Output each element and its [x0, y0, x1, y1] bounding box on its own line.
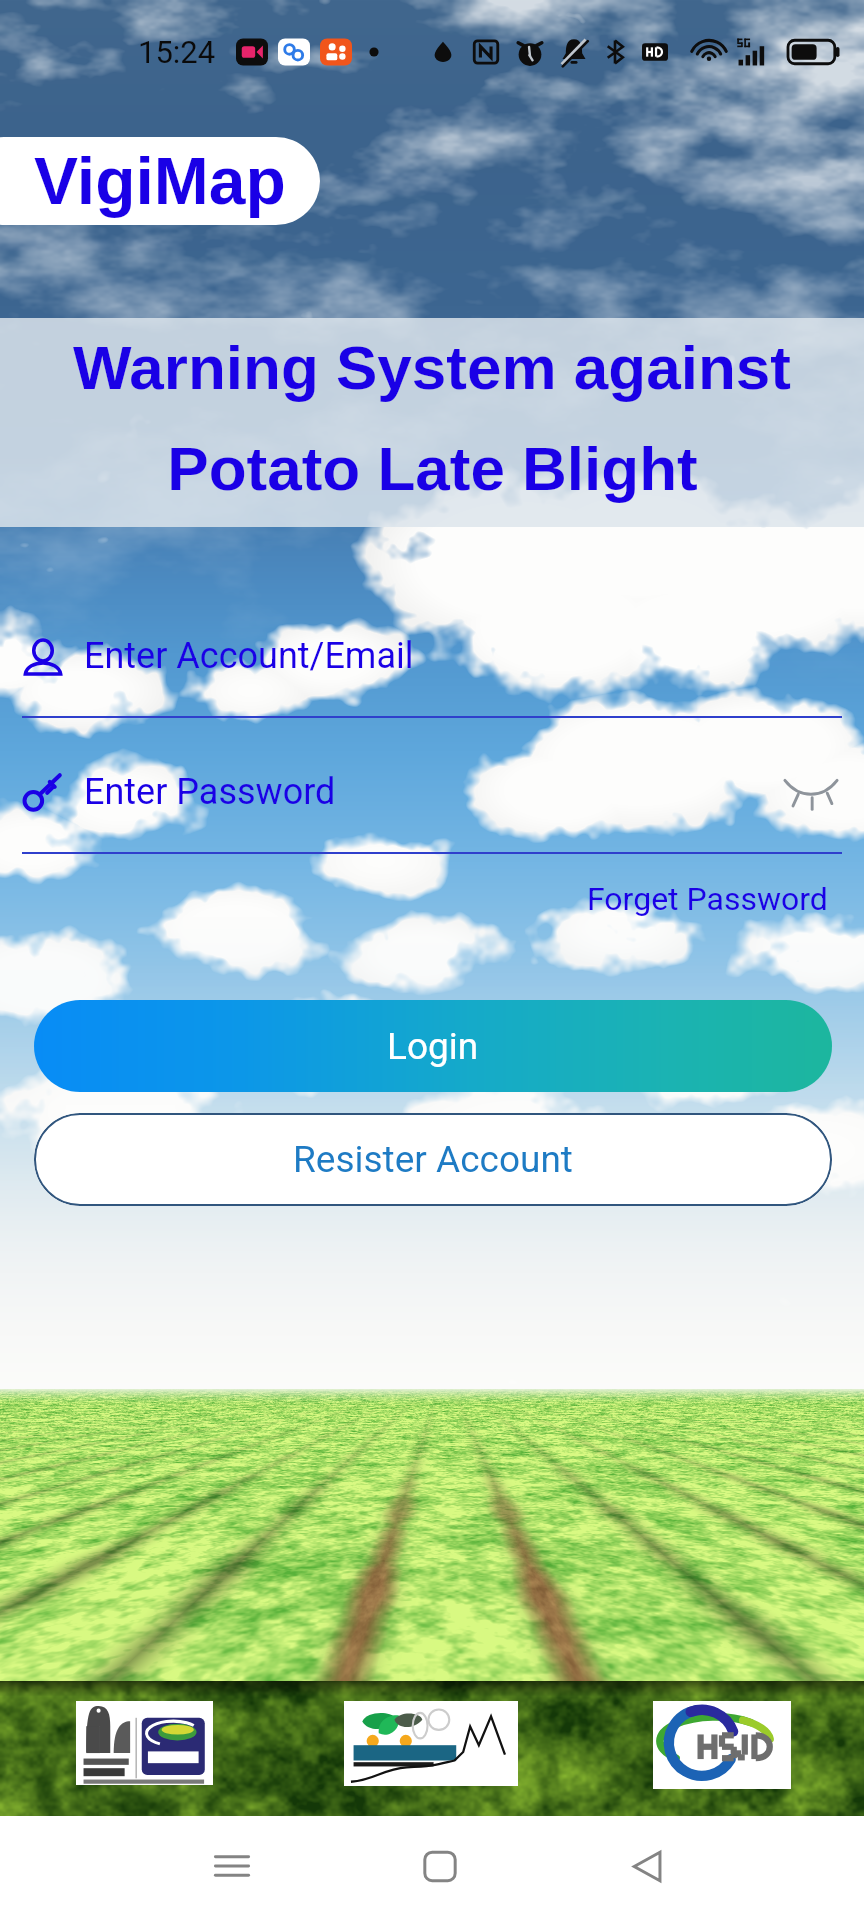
staticText: Warning System against: [73, 333, 791, 402]
button[interactable]: [76, 1701, 213, 1785]
staticText: Login: [387, 1025, 479, 1068]
staticText: VigiMap: [34, 144, 286, 218]
button[interactable]: Back: [598, 1816, 698, 1916]
staticText: Resister Account: [293, 1138, 573, 1181]
staticText: Forget Password: [587, 880, 828, 918]
button[interactable]: Enter Account/Email: [22, 614, 842, 698]
button[interactable]: VigiMap: [0, 137, 320, 225]
button[interactable]: Home: [390, 1816, 490, 1916]
staticText: Enter Password: [84, 771, 336, 813]
button[interactable]: Resister Account: [34, 1113, 832, 1206]
button[interactable]: Recents: [182, 1816, 282, 1916]
button[interactable]: Show password: [780, 761, 842, 823]
button[interactable]: Enter Password: [22, 750, 842, 834]
button[interactable]: Login: [34, 1000, 832, 1092]
staticText: 15:24: [138, 34, 216, 70]
staticText: Enter Account/Email: [84, 635, 414, 677]
button[interactable]: Forget Password: [581, 872, 834, 926]
staticText: Potato Late Blight: [167, 434, 698, 503]
button[interactable]: [344, 1701, 518, 1786]
button[interactable]: [653, 1701, 791, 1789]
